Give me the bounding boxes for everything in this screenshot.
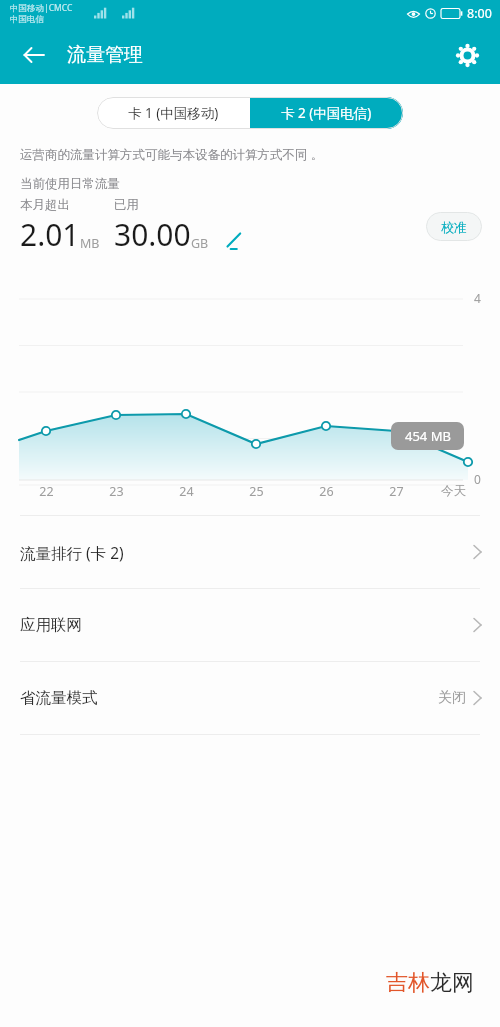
- staticText: 30.00: [114, 214, 191, 255]
- staticText: 应用联网: [20, 615, 82, 635]
- staticText: 454 MB: [405, 427, 451, 445]
- button[interactable]: Edit data plan: [219, 225, 249, 255]
- button[interactable]: 省流量模式: [0, 662, 500, 734]
- staticText: 今天: [441, 483, 466, 499]
- staticText: 2.01: [20, 214, 80, 255]
- staticText: MB: [80, 235, 100, 252]
- button[interactable]: 应用联网: [0, 589, 500, 661]
- staticText: 省流量模式: [20, 688, 98, 708]
- staticText: 当前使用日常流量: [20, 176, 120, 192]
- button[interactable]: 卡 1 (中国移动): [97, 97, 250, 129]
- staticText: 已用: [114, 197, 139, 213]
- staticText: 流量排行 (卡 2): [20, 542, 124, 563]
- button[interactable]: Back: [14, 35, 54, 75]
- button[interactable]: 流量排行 (卡 2): [0, 516, 500, 588]
- staticText: 25: [249, 483, 264, 499]
- staticText: 关闭: [438, 689, 466, 707]
- staticText: 本月超出: [20, 197, 70, 213]
- staticText: 卡 2 (中国电信): [281, 104, 372, 122]
- staticText: 流量管理: [67, 43, 143, 67]
- staticText: 0: [474, 471, 481, 487]
- staticText: 吉林: [386, 969, 430, 997]
- staticText: 校准: [441, 219, 467, 235]
- staticText: 8:00: [467, 5, 492, 22]
- staticText: 24: [179, 483, 194, 499]
- staticText: 中国移动|CMCC: [10, 2, 73, 14]
- staticText: 43: [446, 9, 455, 19]
- button[interactable]: 卡 2 (中国电信): [250, 97, 403, 129]
- staticText: 26: [319, 483, 334, 499]
- staticText: 23: [109, 483, 124, 499]
- staticText: 4: [474, 290, 481, 306]
- staticText: 运营商的流量计算方式可能与本设备的计算方式不同 。: [20, 146, 324, 163]
- staticText: 中国电信: [10, 14, 44, 25]
- staticText: 22: [39, 483, 54, 499]
- staticText: 卡 1 (中国移动): [128, 104, 219, 122]
- button[interactable]: 校准: [426, 212, 482, 241]
- staticText: GB: [191, 235, 209, 252]
- staticText: 27: [389, 483, 404, 499]
- button[interactable]: Settings: [447, 35, 487, 75]
- staticText: 龙网: [430, 969, 474, 997]
